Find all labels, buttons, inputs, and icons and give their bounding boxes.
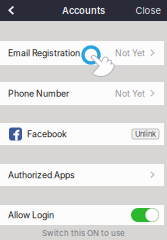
button[interactable]: Authorized Apps [0,164,164,186]
staticText: Not Yet [115,88,145,99]
staticText: Facebook [27,129,67,139]
staticText: Unlink [135,130,156,138]
button[interactable]: Email Registration [0,41,164,65]
button[interactable]: Close [133,0,167,21]
staticText: Close [135,5,160,16]
button[interactable]: Unlink [132,129,159,139]
staticText: Authorized Apps [8,170,75,180]
staticText: Allow Login [8,210,54,220]
button[interactable]: Back [0,0,24,21]
staticText: Not Yet [115,48,145,58]
staticText: Switch this ON to use [42,228,125,238]
staticText: Accounts [62,5,105,16]
button[interactable]: Allow Login [131,208,159,222]
button[interactable]: Phone Number [0,82,164,105]
staticText: Email Registration [8,48,80,58]
staticText: Phone Number [8,88,69,99]
